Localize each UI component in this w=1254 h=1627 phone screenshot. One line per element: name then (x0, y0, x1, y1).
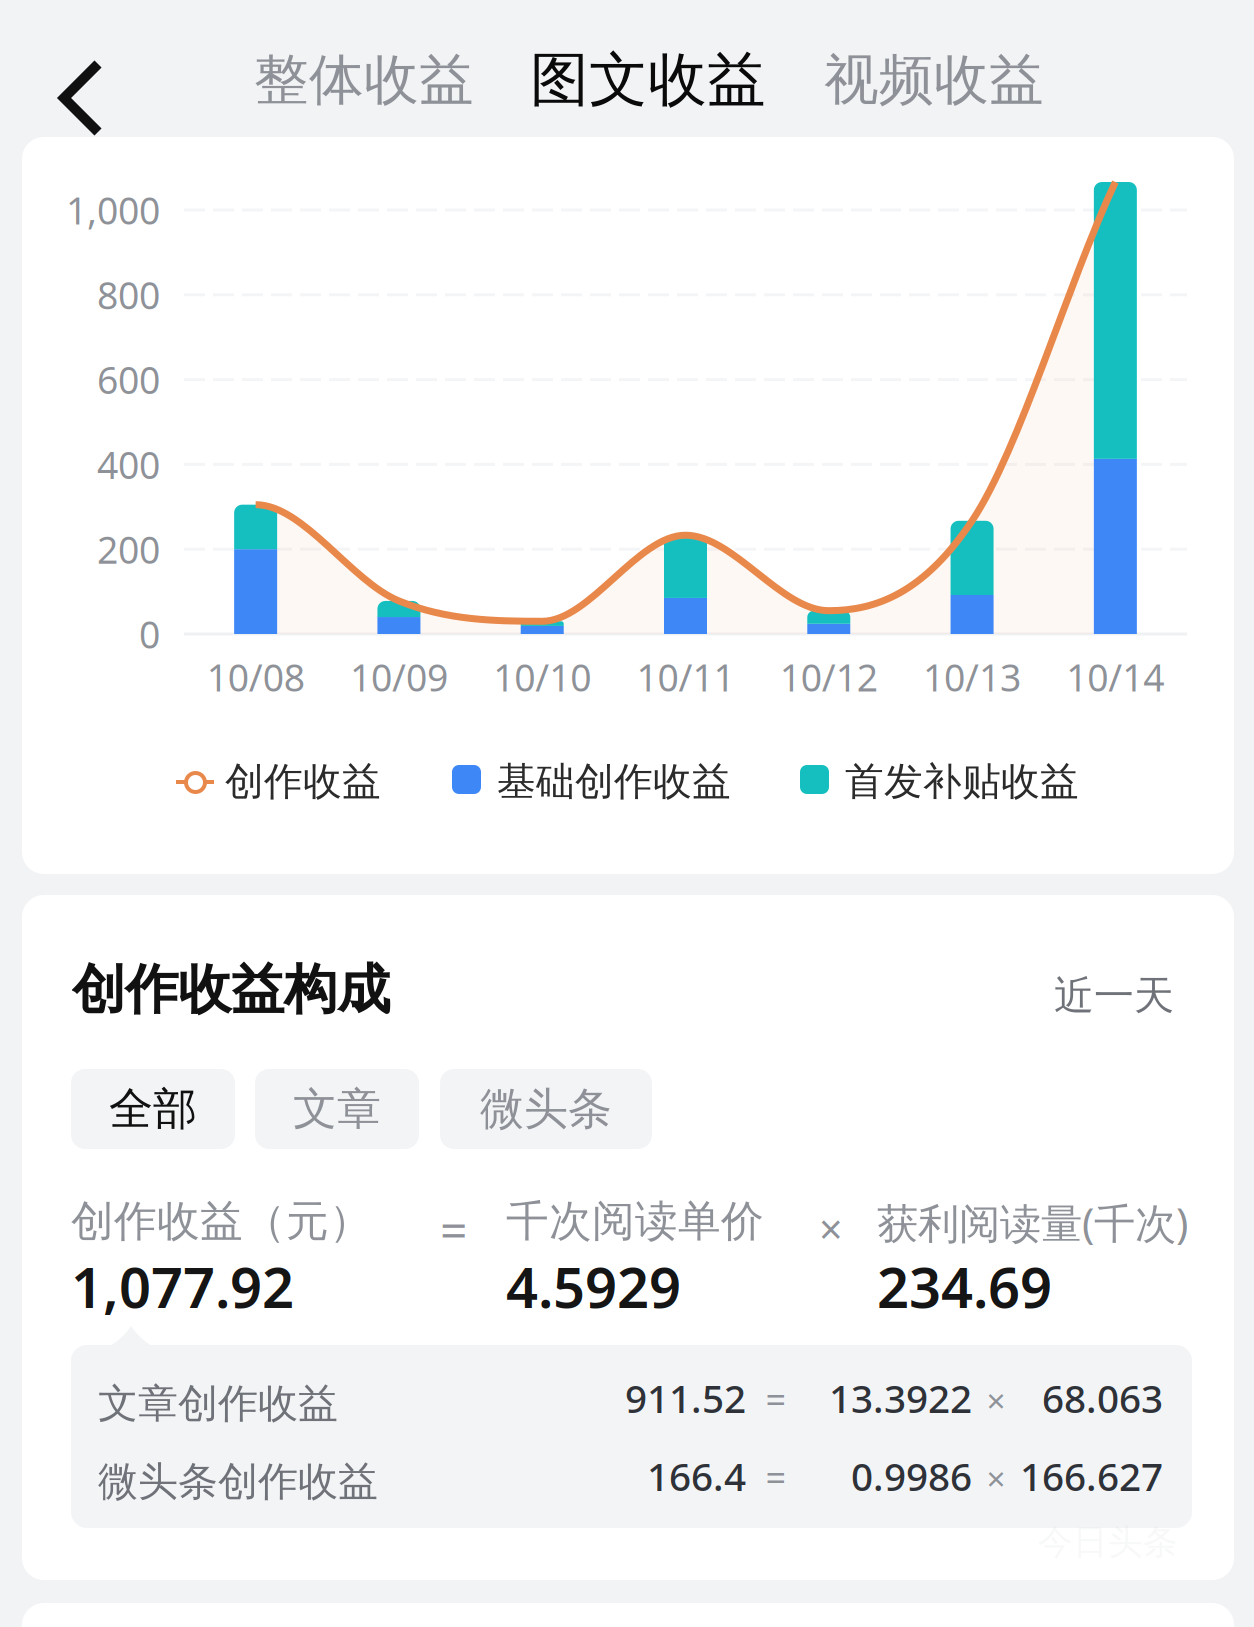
staticText: 1,077.92 (71, 1249, 294, 1323)
staticText: 整体收益 (254, 46, 474, 113)
staticText: = (765, 1453, 786, 1501)
button[interactable]: 微头条 (440, 1069, 652, 1149)
staticText: 文章 (293, 1082, 381, 1136)
staticText: 200 (97, 524, 160, 574)
button[interactable]: 近一天 (1044, 961, 1184, 1030)
staticText: 基础创作收益 (497, 758, 731, 805)
staticText: = (765, 1375, 786, 1423)
button[interactable]: 视频收益 (809, 30, 1059, 130)
staticText: × (986, 1378, 1005, 1422)
staticText: 首发补贴收益 (845, 758, 1079, 805)
staticText: 10/12 (780, 652, 878, 702)
button[interactable]: 基础创作收益 (452, 758, 742, 806)
staticText: 10/13 (923, 652, 1021, 702)
staticText: 0 (139, 609, 160, 659)
staticText: 10/11 (636, 652, 734, 702)
staticText: 视频收益 (824, 46, 1044, 113)
button[interactable]: 图文收益 (523, 30, 773, 130)
staticText: 今日头条 (1038, 1521, 1178, 1564)
button[interactable]: 返回 (58, 52, 138, 144)
staticText: 微头条创作收益 (98, 1457, 378, 1506)
staticText: 1,000 (66, 185, 160, 235)
staticText: 10/10 (493, 652, 591, 702)
staticText: 文章创作收益 (98, 1379, 338, 1428)
staticText: 400 (97, 440, 160, 489)
staticText: 234.69 (877, 1249, 1052, 1323)
staticText: 10/08 (207, 652, 305, 702)
staticText: 创作收益 (225, 758, 381, 805)
staticText: 图文收益 (530, 44, 766, 116)
button[interactable]: 创作收益 (176, 758, 391, 806)
staticText: 911.52 (625, 1372, 746, 1424)
staticText: 创作收益（元） (71, 1195, 372, 1247)
staticText: 166.627 (1020, 1450, 1163, 1502)
staticText: 获利阅读量(千次) (877, 1195, 1188, 1250)
staticText: 68.063 (1042, 1372, 1163, 1424)
staticText: 近一天 (1054, 971, 1174, 1020)
button[interactable]: 全部 (71, 1069, 235, 1149)
button[interactable]: 文章 (255, 1069, 419, 1149)
staticText: 0.9986 (851, 1450, 972, 1502)
staticText: 166.4 (647, 1450, 746, 1502)
staticText: 千次阅读单价 (506, 1195, 764, 1247)
staticText: 10/14 (1066, 652, 1164, 702)
staticText: 600 (97, 355, 160, 404)
staticText: 创作收益构成 (72, 957, 390, 1022)
staticText: = (440, 1197, 467, 1261)
staticText: × (986, 1456, 1005, 1500)
staticText: 13.3922 (829, 1372, 972, 1424)
staticText: 800 (97, 270, 160, 320)
staticText: 10/09 (350, 652, 448, 702)
button[interactable]: 整体收益 (239, 30, 489, 130)
staticText: 全部 (109, 1082, 197, 1136)
button[interactable]: 首发补贴收益 (800, 758, 1090, 806)
staticText: 4.5929 (506, 1249, 681, 1323)
staticText: 微头条 (480, 1082, 612, 1136)
staticText: × (819, 1201, 843, 1256)
